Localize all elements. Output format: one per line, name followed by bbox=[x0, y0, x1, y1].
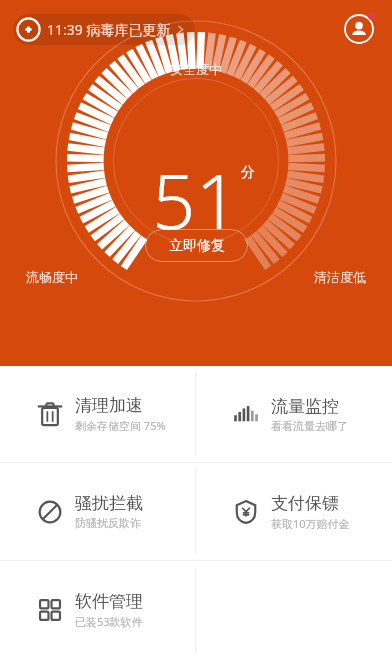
staticText: 获取10万赔付金 bbox=[271, 516, 350, 531]
staticText: 11:39 病毒库已更新 bbox=[47, 20, 171, 39]
staticText: 流量监控 bbox=[271, 396, 339, 417]
button[interactable]: Profile bbox=[341, 11, 377, 47]
button[interactable]: 骚扰拦截 bbox=[0, 463, 196, 560]
other: Virus database updated bbox=[16, 17, 41, 42]
button[interactable]: 流量监控 bbox=[196, 366, 392, 462]
button[interactable]: Virus database updated bbox=[13, 14, 195, 45]
staticText: 清洁度低 bbox=[314, 269, 366, 285]
staticText: 软件管理 bbox=[75, 591, 143, 612]
button[interactable]: 立即修复 bbox=[145, 229, 248, 262]
button[interactable]: 软件管理 bbox=[0, 561, 196, 658]
staticText: 已装53款软件 bbox=[75, 614, 143, 629]
button[interactable]: 支付保镖 bbox=[196, 463, 392, 560]
staticText: 防骚扰反欺诈 bbox=[75, 516, 141, 530]
staticText: 支付保镖 bbox=[271, 493, 339, 514]
button[interactable]: 清理加速 bbox=[0, 366, 196, 462]
staticText: 安全度中 bbox=[170, 61, 222, 77]
staticText: 骚扰拦截 bbox=[75, 493, 143, 514]
staticText: 51 bbox=[152, 148, 239, 252]
staticText: 剩余存储空间 75% bbox=[75, 418, 166, 433]
staticText: 流畅度中 bbox=[26, 269, 78, 285]
staticText: 清理加速 bbox=[75, 395, 143, 416]
staticText: 立即修复 bbox=[169, 237, 225, 255]
staticText: 看看流量去哪了 bbox=[271, 419, 348, 433]
staticText: 分 bbox=[241, 164, 255, 182]
